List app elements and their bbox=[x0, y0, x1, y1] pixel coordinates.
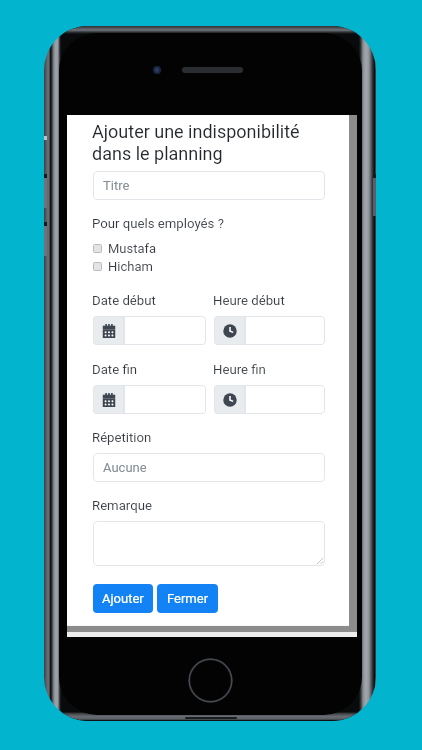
button[interactable]: Hicham bbox=[93, 259, 153, 273]
staticText: Titre bbox=[103, 178, 130, 193]
button[interactable]: Accueil bbox=[188, 658, 233, 703]
staticText: Mustafa bbox=[108, 241, 157, 255]
staticText: Date fin bbox=[92, 362, 137, 377]
other: Choisir la date bbox=[93, 316, 124, 345]
staticText: Ajouter une indisponibilité bbox=[92, 121, 300, 142]
staticText: Pour quels employés ? bbox=[92, 216, 224, 231]
staticText: dans le planning bbox=[92, 143, 223, 164]
button[interactable]: Mustafa bbox=[93, 241, 157, 255]
staticText: Hicham bbox=[108, 259, 153, 273]
staticText: Heure fin bbox=[213, 362, 266, 377]
button[interactable]: Titre bbox=[93, 171, 325, 200]
button[interactable]: Aucune bbox=[93, 453, 325, 482]
staticText: Ajouter bbox=[102, 591, 144, 606]
button[interactable]: Choisir la date bbox=[93, 385, 206, 414]
other: Choisir la date bbox=[93, 385, 124, 414]
button[interactable]: Choisir la date bbox=[93, 316, 206, 345]
staticText: Aucune bbox=[103, 460, 147, 475]
button[interactable] bbox=[93, 521, 325, 566]
other: Choisir l'heure bbox=[214, 385, 245, 414]
other: Choisir l'heure bbox=[214, 316, 245, 345]
button[interactable]: Choisir l'heure bbox=[214, 385, 325, 414]
staticText: Date début bbox=[92, 293, 156, 308]
staticText: Répetition bbox=[92, 430, 152, 445]
staticText: Fermer bbox=[167, 591, 209, 606]
button[interactable]: Ajouter bbox=[93, 584, 153, 613]
staticText: Remarque bbox=[92, 498, 152, 513]
staticText: Heure début bbox=[213, 293, 285, 308]
button[interactable]: Fermer bbox=[157, 584, 218, 613]
button[interactable]: Choisir l'heure bbox=[214, 316, 325, 345]
